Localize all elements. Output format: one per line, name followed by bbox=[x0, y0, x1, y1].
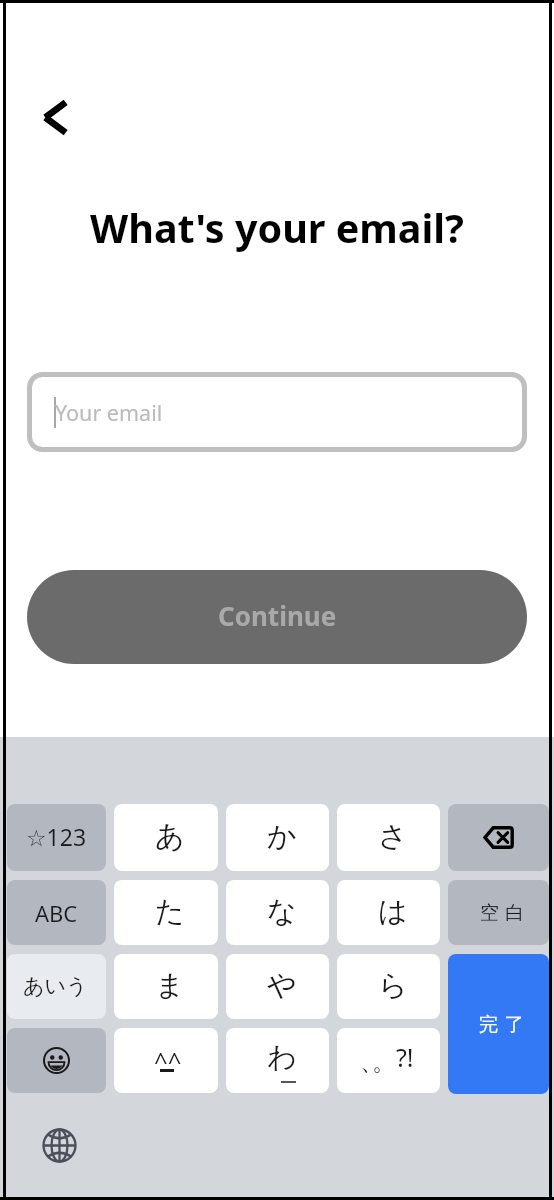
staticText: 空白 bbox=[477, 901, 527, 925]
button[interactable]: 空白 bbox=[448, 880, 549, 945]
staticText: な bbox=[267, 893, 297, 930]
staticText: わ bbox=[267, 1039, 297, 1076]
staticText: 、 bbox=[360, 1047, 384, 1077]
staticText: 完了 bbox=[476, 1012, 527, 1037]
staticText: ABC bbox=[35, 898, 78, 928]
staticText: ?! bbox=[396, 1040, 414, 1074]
staticText: あ bbox=[155, 818, 185, 855]
staticText: や bbox=[267, 967, 297, 1004]
staticText: か bbox=[267, 818, 297, 855]
button[interactable]: Emoji bbox=[7, 1028, 106, 1093]
button[interactable]: Continue bbox=[27, 570, 527, 664]
staticText: ☆123 bbox=[26, 821, 87, 852]
button[interactable]: 、 bbox=[337, 1028, 440, 1093]
staticText: あいう bbox=[23, 973, 88, 999]
button[interactable]: わ bbox=[226, 1028, 329, 1093]
staticText: What's your email? bbox=[0, 201, 554, 255]
button[interactable]: は bbox=[337, 880, 440, 945]
staticText: Continue bbox=[218, 598, 337, 633]
button[interactable]: か bbox=[226, 804, 329, 871]
staticText: た bbox=[155, 893, 185, 930]
staticText: Your email bbox=[55, 398, 163, 427]
button[interactable]: ^^ bbox=[114, 1028, 218, 1093]
staticText: ら bbox=[378, 967, 408, 1004]
button[interactable]: 完了 bbox=[448, 954, 549, 1094]
button[interactable]: Back bbox=[21, 83, 89, 151]
button[interactable]: た bbox=[114, 880, 218, 945]
button[interactable]: ら bbox=[337, 954, 440, 1019]
button[interactable]: Your email bbox=[27, 372, 527, 452]
button[interactable]: さ bbox=[337, 804, 440, 871]
staticText: さ bbox=[378, 818, 408, 855]
staticText: ^^ bbox=[154, 1044, 182, 1077]
button[interactable]: あいう bbox=[7, 954, 106, 1019]
button[interactable]: Change keyboard bbox=[36, 1122, 82, 1168]
staticText: は bbox=[378, 893, 408, 930]
button[interactable]: ABC bbox=[7, 880, 106, 945]
staticText: 。 bbox=[372, 1047, 396, 1077]
button[interactable]: な bbox=[226, 880, 329, 945]
button[interactable]: や bbox=[226, 954, 329, 1019]
button[interactable]: ま bbox=[114, 954, 218, 1019]
button[interactable]: Delete bbox=[448, 804, 549, 871]
button[interactable]: ☆123 bbox=[7, 804, 106, 871]
button[interactable]: あ bbox=[114, 804, 218, 871]
staticText: ま bbox=[155, 967, 185, 1004]
